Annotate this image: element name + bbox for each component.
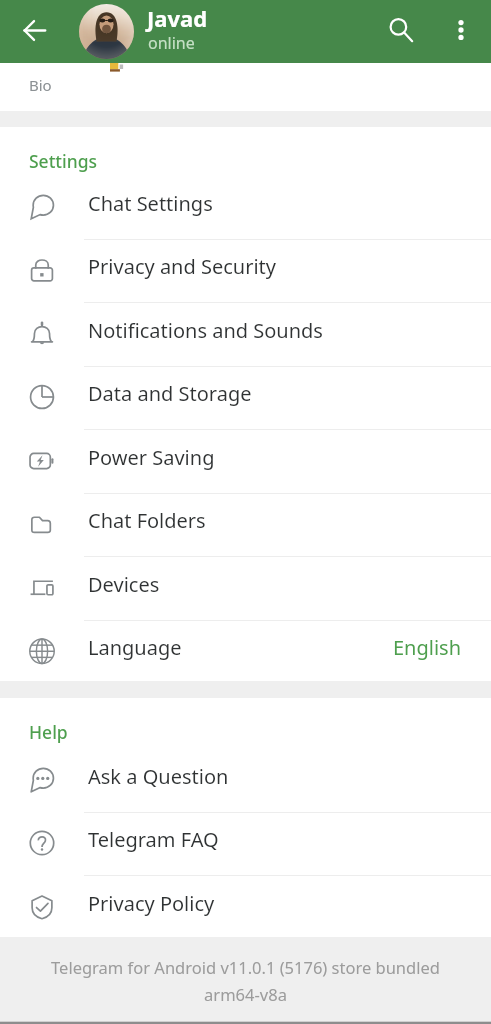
button[interactable]: Chat Settings bbox=[0, 176, 491, 240]
staticText: Telegram for Android v11.0.1 (5176) stor… bbox=[51, 956, 440, 978]
staticText: Devices bbox=[88, 571, 160, 598]
button[interactable]: Notifications and Sounds bbox=[0, 303, 491, 367]
staticText: Power Saving bbox=[88, 444, 215, 471]
staticText: Settings bbox=[29, 149, 98, 173]
staticText: online bbox=[148, 32, 195, 54]
button[interactable]: More options bbox=[435, 4, 487, 56]
staticText: Privacy Policy bbox=[88, 890, 215, 917]
staticText: Help bbox=[29, 720, 68, 744]
staticText: Language bbox=[88, 634, 182, 661]
button[interactable]: Language bbox=[0, 620, 491, 684]
button[interactable]: Chat Folders bbox=[0, 493, 491, 557]
staticText: Data and Storage bbox=[88, 380, 252, 407]
staticText: Chat Folders bbox=[88, 507, 206, 534]
staticText: Notifications and Sounds bbox=[88, 317, 323, 344]
button[interactable]: Data and Storage bbox=[0, 366, 491, 430]
button[interactable]: Power Saving bbox=[0, 430, 491, 494]
staticText: Ask a Question bbox=[88, 763, 229, 790]
staticText: Bio bbox=[29, 75, 52, 95]
button[interactable]: Ask a Question bbox=[0, 749, 491, 813]
button[interactable]: Profile photo bbox=[79, 4, 134, 59]
staticText: arm64-v8a bbox=[204, 983, 287, 1005]
button[interactable]: Back bbox=[8, 4, 60, 56]
staticText: Telegram FAQ bbox=[88, 826, 219, 853]
button[interactable]: Privacy and Security bbox=[0, 239, 491, 303]
staticText: Chat Settings bbox=[88, 190, 213, 217]
staticText: Privacy and Security bbox=[88, 253, 277, 280]
button[interactable]: Telegram FAQ bbox=[0, 812, 491, 876]
button[interactable]: Search bbox=[375, 4, 427, 56]
button[interactable]: Privacy Policy bbox=[0, 876, 491, 940]
button[interactable]: Devices bbox=[0, 557, 491, 621]
staticText: Javad bbox=[147, 3, 208, 33]
staticText: English bbox=[393, 634, 462, 661]
